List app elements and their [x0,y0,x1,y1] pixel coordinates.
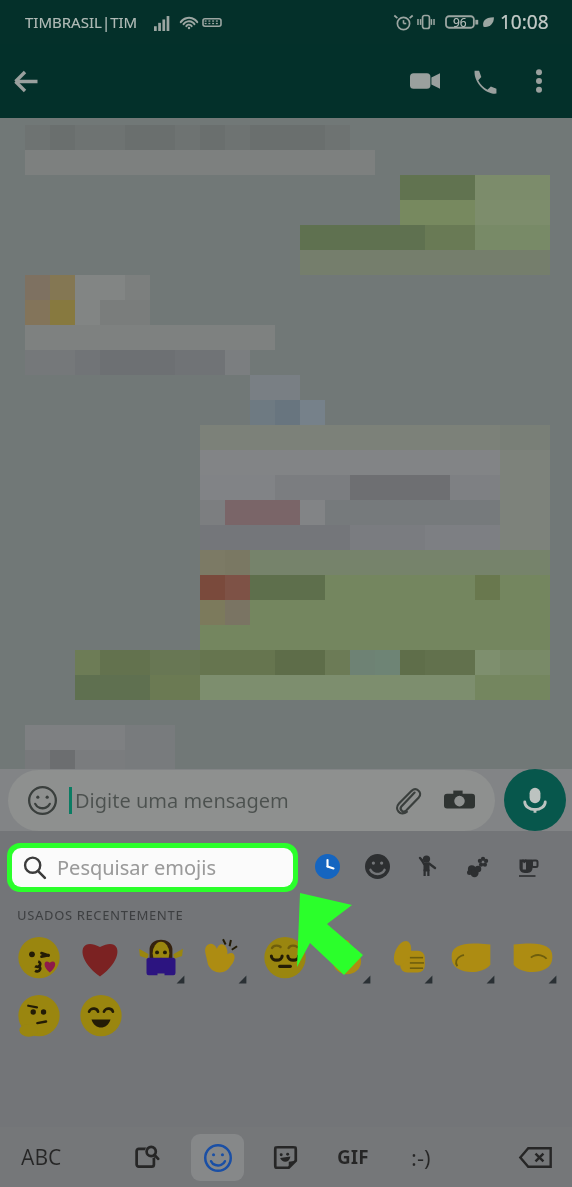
button[interactable]: Video call [396,52,454,110]
button[interactable]: kiss [8,931,69,989]
button[interactable]: thumbup [378,931,440,989]
button[interactable]: relieved [254,931,316,989]
button[interactable]: Back [4,59,48,103]
button[interactable]: Smileys [352,842,402,890]
staticText: :-) [411,1142,431,1172]
button[interactable]: Pesquisar emojis [12,848,293,887]
button[interactable]: Search stickers [114,1127,182,1187]
button[interactable]: smile [70,989,132,1047]
button[interactable]: People [402,842,452,890]
staticText: Pesquisar emojis [57,854,217,881]
button[interactable]: Emoji [183,1127,251,1187]
button[interactable]: fistr [502,931,564,989]
button[interactable]: Digite uma mensagem [8,770,495,831]
button[interactable]: ABC [9,1127,73,1187]
staticText: Digite uma mensagem [75,787,289,814]
button[interactable]: Recent [302,842,352,890]
button[interactable]: shrug [130,931,192,989]
button[interactable]: heart [69,931,130,989]
button[interactable]: Call [454,52,512,110]
button[interactable]: Stickers [251,1127,319,1187]
button[interactable]: clap [192,931,254,989]
button[interactable]: think [8,989,70,1047]
button[interactable]: Nature [452,842,502,890]
staticText: 10:08 [500,9,549,35]
staticText: USADOS RECENTEMENTE [17,906,184,924]
button[interactable]: crossed [316,931,378,989]
button[interactable]: More options [512,54,566,108]
button[interactable]: GIF [319,1127,387,1187]
staticText: GIF [337,1144,369,1170]
button[interactable]: fistl [440,931,502,989]
button[interactable]: Backspace [498,1127,572,1187]
button[interactable]: Food [502,842,552,890]
button[interactable]: Voice message [504,769,566,831]
button[interactable]: :-) [387,1127,455,1187]
staticText: ABC [21,1143,62,1172]
staticText: 96 [453,14,467,30]
staticText: TIMBRASIL|TIM [25,12,138,32]
